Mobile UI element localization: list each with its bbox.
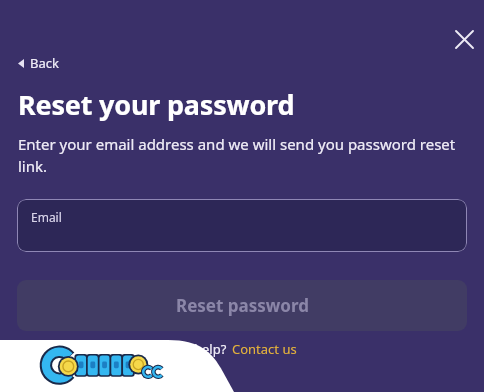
button[interactable]: Back (14, 52, 63, 74)
staticText: Back (30, 54, 59, 72)
button[interactable]: Contact us (232, 340, 297, 358)
button[interactable]: Reset password (17, 280, 467, 331)
staticText: Reset password (176, 294, 309, 317)
button[interactable]: Close (444, 19, 484, 59)
staticText: Email (31, 209, 62, 225)
staticText: Need help? (158, 340, 227, 358)
staticText: Contact us (232, 340, 297, 358)
button[interactable]: Casinos.cc logo (34, 346, 174, 386)
button[interactable]: Email (17, 199, 467, 252)
staticText: Reset your password (18, 86, 295, 123)
staticText: Enter your email address and we will sen… (18, 134, 462, 177)
